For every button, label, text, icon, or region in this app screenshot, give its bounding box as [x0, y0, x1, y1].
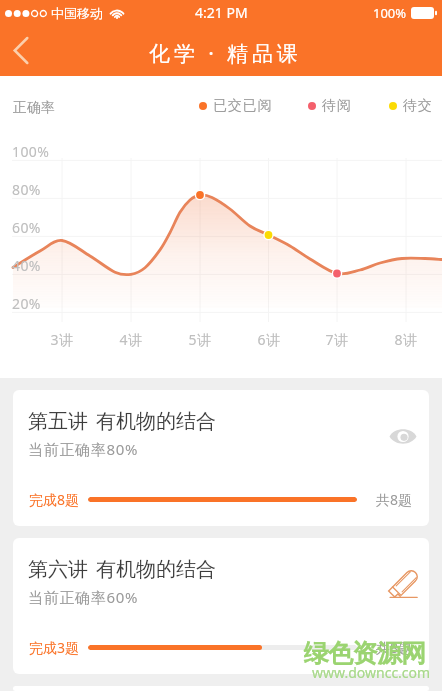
staticText: 第五讲: [28, 409, 88, 434]
button[interactable]: Back: [0, 25, 52, 76]
staticText: 60%: [12, 218, 41, 237]
staticText: 待交: [403, 97, 433, 115]
staticText: 8讲: [388, 330, 424, 349]
staticText: 4:21 PM: [195, 3, 248, 22]
staticText: 正确率: [13, 99, 55, 117]
button[interactable]: Preview answers: [381, 414, 425, 458]
staticText: www.downcc.com: [312, 663, 431, 682]
staticText: 绿色资源网: [304, 638, 426, 669]
staticText: 中国移动: [51, 5, 103, 21]
staticText: 100%: [373, 4, 407, 22]
staticText: 有机物的结合: [96, 409, 216, 434]
staticText: 完成3题: [29, 638, 80, 657]
staticText: 已交已阅: [213, 97, 273, 115]
staticText: 40%: [12, 256, 41, 275]
button[interactable]: 第五讲: [13, 390, 429, 526]
staticText: 3讲: [44, 330, 80, 349]
staticText: 5讲: [182, 330, 218, 349]
staticText: 化学 · 精品课: [149, 39, 302, 68]
staticText: 第六讲: [28, 557, 88, 582]
staticText: 4讲: [113, 330, 149, 349]
staticText: 当前正确率80%: [28, 439, 139, 459]
button[interactable]: Edit: [381, 562, 425, 606]
button[interactable]: 第六讲: [13, 538, 429, 674]
staticText: 共8题: [376, 490, 413, 509]
staticText: 6讲: [251, 330, 287, 349]
staticText: 共8题: [376, 638, 413, 657]
staticText: 100%: [12, 142, 50, 161]
staticText: 20%: [12, 294, 41, 313]
staticText: 有机物的结合: [96, 557, 216, 582]
staticText: 完成8题: [29, 490, 80, 509]
staticText: 当前正确率60%: [28, 587, 139, 607]
staticText: 80%: [12, 180, 41, 199]
staticText: 待阅: [322, 97, 352, 115]
staticText: 7讲: [319, 330, 355, 349]
